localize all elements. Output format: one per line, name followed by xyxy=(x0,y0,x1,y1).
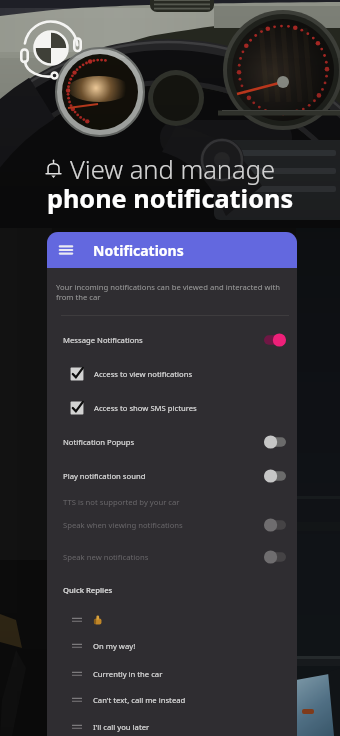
button[interactable]: Access to view notifications xyxy=(47,362,297,386)
button[interactable]: Reorder xyxy=(47,609,297,631)
staticText: Access to show SMS pictures xyxy=(94,403,197,413)
button[interactable]: Speak new notifications xyxy=(47,545,297,569)
button[interactable]: Reorder xyxy=(47,635,297,657)
staticText: Your incoming notifications can be viewe… xyxy=(56,282,290,302)
staticText: On my way! xyxy=(93,641,136,651)
other: Reorder xyxy=(72,669,82,679)
button[interactable]: Play notification sound xyxy=(47,464,297,488)
other: App logo xyxy=(19,16,83,80)
button[interactable]: Reorder xyxy=(47,716,297,736)
staticText: Speak when viewing notifications xyxy=(63,520,264,530)
staticText: Notifications xyxy=(93,241,184,260)
button[interactable]: Access to show SMS pictures xyxy=(47,396,297,420)
staticText: Play notification sound xyxy=(63,471,264,481)
other: Reorder xyxy=(72,722,82,732)
button[interactable]: Reorder xyxy=(47,663,297,685)
staticText: Access to view notifications xyxy=(94,369,193,379)
button[interactable]: Menu xyxy=(56,240,76,260)
button[interactable]: Menu xyxy=(47,232,297,268)
button[interactable]: Reorder xyxy=(47,689,297,711)
staticText: Message Notifications xyxy=(63,335,264,345)
staticText: Currently in the car xyxy=(93,669,163,679)
staticText: phone notifications xyxy=(0,181,340,215)
other: Reorder xyxy=(72,695,82,705)
staticText: I'll call you later xyxy=(93,722,150,732)
staticText: View and manage xyxy=(70,152,276,187)
button[interactable]: Message Notifications xyxy=(47,328,297,352)
other: Reorder xyxy=(72,615,82,625)
staticText: Speak new notifications xyxy=(63,552,264,562)
staticText: TTS is not supported by your car xyxy=(63,497,180,507)
staticText: Can't text, call me instead xyxy=(93,695,186,705)
staticText: Notification Popups xyxy=(63,437,264,447)
button[interactable]: Notification Popups xyxy=(47,430,297,454)
staticText: Quick Replies xyxy=(63,585,113,595)
other: Reorder xyxy=(72,641,82,651)
button[interactable]: Speak when viewing notifications xyxy=(47,513,297,537)
